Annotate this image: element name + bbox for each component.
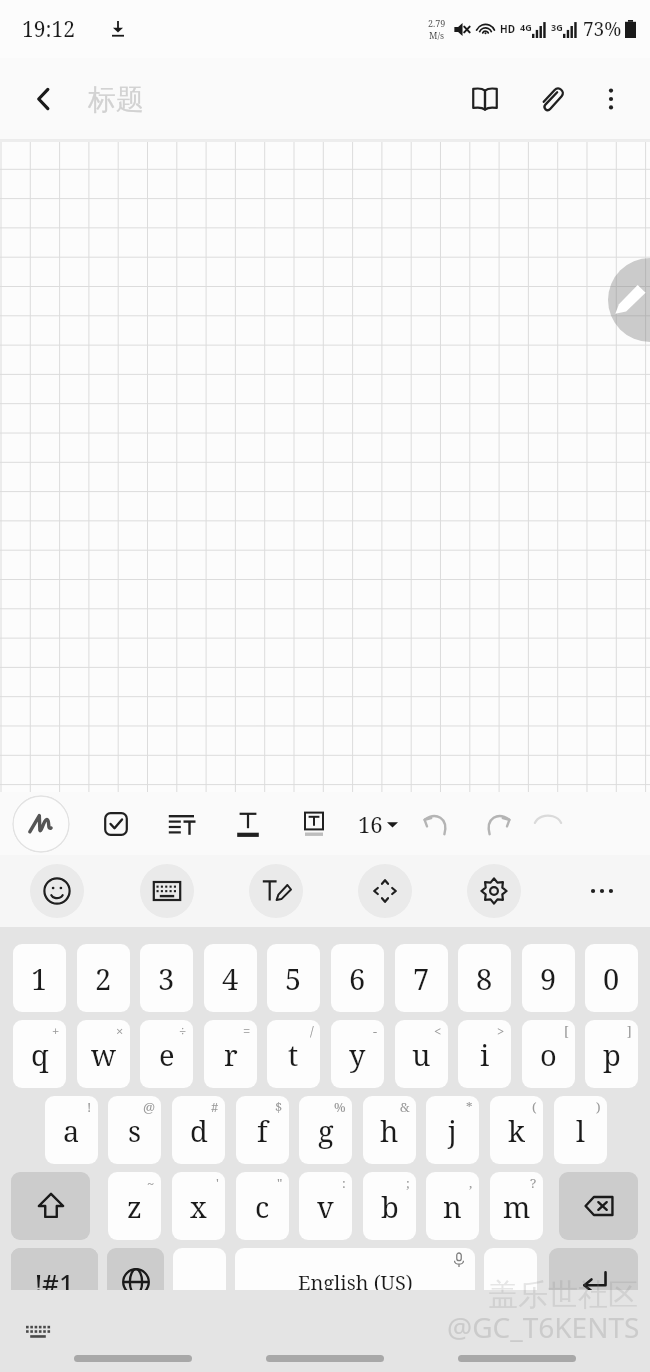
button[interactable]: Paragraph style <box>160 802 204 846</box>
button[interactable]: 2 <box>77 944 130 1012</box>
button[interactable]: Text box <box>292 802 336 846</box>
staticText: ; <box>406 1174 410 1192</box>
button[interactable]: Enter <box>549 1248 638 1316</box>
staticText: . <box>500 1271 507 1306</box>
staticText: 16 <box>358 809 383 839</box>
staticText: a <box>63 1111 80 1150</box>
staticText: ÷ <box>179 1022 187 1040</box>
staticText: d <box>190 1111 208 1150</box>
staticText: < <box>434 1022 442 1040</box>
button[interactable]: - <box>331 1020 384 1088</box>
staticText: ~ <box>147 1174 155 1192</box>
button[interactable]: Shift <box>11 1172 90 1240</box>
button[interactable]: % <box>299 1096 352 1164</box>
button[interactable]: Attach <box>528 76 574 122</box>
button[interactable]: ; <box>363 1172 416 1240</box>
button[interactable]: Change language <box>107 1248 164 1316</box>
staticText: = <box>243 1022 251 1040</box>
button[interactable]: Navigation <box>458 1355 576 1362</box>
button[interactable]: 1 <box>13 944 66 1012</box>
button[interactable]: ! <box>45 1096 98 1164</box>
staticText: l <box>576 1111 585 1150</box>
button[interactable]: Redo <box>476 802 520 846</box>
button[interactable]: & <box>363 1096 416 1164</box>
button[interactable]: Text style <box>226 802 270 846</box>
button[interactable]: 5 <box>267 944 320 1012</box>
button[interactable]: Move keyboard <box>358 864 412 918</box>
button[interactable]: More options <box>588 76 634 122</box>
button[interactable]: ~ <box>108 1172 161 1240</box>
button[interactable]: 4 <box>204 944 257 1012</box>
staticText: 盖乐世社区 <box>488 1276 638 1314</box>
button[interactable]: Checklist <box>94 802 138 846</box>
staticText: s <box>128 1111 142 1150</box>
button[interactable]: Navigation <box>266 1355 384 1362</box>
staticText: 7 <box>413 959 430 998</box>
button[interactable]: = <box>204 1020 257 1088</box>
staticText: " <box>277 1174 283 1192</box>
staticText: - <box>373 1022 378 1040</box>
button[interactable]: !#1 <box>11 1248 98 1316</box>
button[interactable]: Navigation <box>74 1355 192 1362</box>
button[interactable]: Settings <box>467 864 521 918</box>
button[interactable]: ? <box>490 1172 543 1240</box>
button[interactable]: . <box>484 1248 537 1316</box>
button[interactable]: 0 <box>585 944 638 1012</box>
button[interactable]: Hide keyboard <box>18 1311 58 1351</box>
button[interactable]: " <box>236 1172 289 1240</box>
button[interactable]: ' <box>172 1172 225 1240</box>
staticText: i <box>480 1035 490 1074</box>
button[interactable]: English (US) <box>235 1248 475 1316</box>
button[interactable]: Reading mode <box>462 76 508 122</box>
staticText: English (US) <box>298 1269 413 1296</box>
button[interactable]: * <box>426 1096 479 1164</box>
button[interactable]: Undo <box>414 802 458 846</box>
staticText: & <box>400 1098 410 1116</box>
button[interactable]: : <box>299 1172 352 1240</box>
button[interactable]: Write <box>608 258 650 342</box>
button[interactable]: < <box>395 1020 448 1088</box>
staticText: $ <box>275 1098 283 1116</box>
button[interactable]: Emoji <box>30 864 84 918</box>
staticText: 73% <box>583 16 622 42</box>
button[interactable]: 3 <box>140 944 193 1012</box>
button[interactable]: Handwriting input <box>249 864 303 918</box>
button[interactable]: 8 <box>458 944 511 1012</box>
button[interactable]: , <box>426 1172 479 1240</box>
button[interactable]: 9 <box>522 944 575 1012</box>
button[interactable]: , <box>173 1248 226 1316</box>
staticText: g <box>318 1111 334 1150</box>
button[interactable]: Symbols <box>11 1248 98 1316</box>
staticText: w <box>91 1035 116 1074</box>
staticText: y <box>349 1035 366 1074</box>
button[interactable]: > <box>458 1020 511 1088</box>
button[interactable]: + <box>13 1020 66 1088</box>
button[interactable]: Backspace <box>559 1172 638 1240</box>
button[interactable]: # <box>172 1096 225 1164</box>
button[interactable]: 6 <box>331 944 384 1012</box>
button[interactable]: Keyboard <box>140 864 194 918</box>
staticText: : <box>342 1174 346 1192</box>
staticText: @GC_T6KENTS <box>447 1308 640 1346</box>
staticText: n <box>443 1187 462 1226</box>
button[interactable]: 7 <box>395 944 448 1012</box>
staticText: × <box>116 1022 124 1040</box>
button[interactable]: 16 <box>354 803 402 845</box>
staticText: 0 <box>603 959 620 998</box>
staticText: + <box>52 1022 60 1040</box>
button[interactable]: [ <box>522 1020 575 1088</box>
button[interactable]: ] <box>585 1020 638 1088</box>
staticText: 19:12 <box>22 15 75 44</box>
button[interactable]: × <box>77 1020 130 1088</box>
button[interactable]: $ <box>236 1096 289 1164</box>
button[interactable]: @ <box>108 1096 161 1164</box>
button[interactable]: ( <box>490 1096 543 1164</box>
button[interactable]: / <box>267 1020 320 1088</box>
button[interactable]: Handwriting <box>12 795 70 853</box>
staticText: m <box>503 1187 531 1226</box>
button[interactable]: Back <box>22 77 66 121</box>
button[interactable]: More <box>576 865 628 917</box>
button[interactable]: ÷ <box>140 1020 193 1088</box>
staticText: 5 <box>285 959 302 998</box>
button[interactable]: ) <box>554 1096 607 1164</box>
